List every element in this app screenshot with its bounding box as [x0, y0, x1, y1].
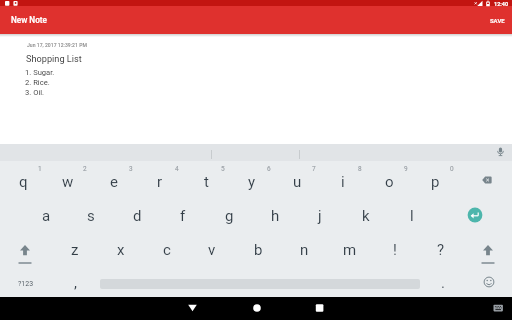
- staticText: 5: [221, 165, 225, 173]
- button[interactable]: i: [321, 167, 365, 197]
- staticText: 7: [312, 165, 316, 173]
- button[interactable]: [176, 298, 209, 319]
- button[interactable]: [464, 230, 509, 262]
- staticText: t: [204, 173, 209, 191]
- button[interactable]: r: [138, 167, 182, 197]
- staticText: g: [225, 207, 234, 225]
- button[interactable]: [0, 230, 45, 262]
- button[interactable]: y: [230, 167, 274, 197]
- button[interactable]: [240, 298, 273, 319]
- staticText: 4: [175, 165, 179, 173]
- button[interactable]: m: [328, 234, 372, 266]
- button[interactable]: x: [99, 234, 143, 266]
- staticText: 8: [358, 165, 362, 173]
- staticText: c: [163, 241, 171, 259]
- staticText: y: [248, 173, 256, 191]
- staticText: a: [42, 207, 51, 225]
- staticText: 2: [83, 165, 87, 173]
- staticText: e: [110, 173, 118, 191]
- staticText: d: [133, 207, 142, 225]
- button[interactable]: [464, 163, 509, 194]
- staticText: ,: [74, 274, 77, 292]
- staticText: h: [271, 207, 280, 225]
- button[interactable]: a: [24, 200, 68, 232]
- staticText: k: [362, 207, 370, 225]
- staticText: j: [318, 207, 322, 225]
- button[interactable]: s: [69, 200, 113, 232]
- staticText: 3: [129, 165, 133, 173]
- staticText: ?: [437, 241, 445, 259]
- button[interactable]: c: [145, 234, 189, 266]
- staticText: m: [343, 241, 357, 259]
- staticText: Shopping List: [26, 53, 82, 64]
- button[interactable]: b: [236, 234, 280, 266]
- button[interactable]: w: [46, 167, 90, 197]
- button[interactable]: t: [184, 167, 228, 197]
- button[interactable]: [453, 196, 498, 229]
- button[interactable]: n: [282, 234, 326, 266]
- staticText: o: [385, 173, 394, 191]
- button[interactable]: SAVE: [484, 13, 510, 27]
- staticText: 9: [404, 165, 408, 173]
- staticText: z: [71, 241, 79, 259]
- button[interactable]: [303, 298, 336, 319]
- staticText: p: [431, 173, 440, 191]
- staticText: q: [19, 173, 28, 191]
- button[interactable]: g: [207, 200, 251, 232]
- button[interactable]: [488, 144, 512, 161]
- staticText: 6: [267, 165, 271, 173]
- staticText: b: [254, 241, 263, 259]
- button[interactable]: ,: [60, 268, 90, 298]
- staticText: !: [393, 241, 397, 259]
- staticText: x: [117, 241, 125, 259]
- staticText: n: [300, 241, 309, 259]
- staticText: 12:40: [494, 1, 509, 7]
- button[interactable]: .: [428, 268, 458, 298]
- staticText: Jun 17, 2017 12:39:21 PM: [27, 42, 87, 48]
- staticText: s: [87, 207, 95, 225]
- staticText: 1: [38, 165, 42, 173]
- button[interactable]: z: [53, 234, 97, 266]
- button[interactable]: ?: [419, 234, 463, 266]
- staticText: 0: [450, 165, 454, 173]
- button[interactable]: d: [115, 200, 159, 232]
- button[interactable]: e: [92, 167, 136, 197]
- button[interactable]: j: [298, 200, 342, 232]
- button[interactable]: v: [190, 234, 234, 266]
- button[interactable]: p: [413, 167, 457, 197]
- staticText: New Note: [11, 15, 47, 25]
- staticText: u: [293, 173, 302, 191]
- button[interactable]: u: [275, 167, 319, 197]
- staticText: f: [180, 207, 186, 225]
- button[interactable]: !: [373, 234, 417, 266]
- button[interactable]: h: [253, 200, 297, 232]
- button[interactable]: q: [1, 167, 45, 197]
- staticText: .: [441, 274, 445, 292]
- button[interactable]: ?123: [6, 269, 46, 299]
- button[interactable]: l: [390, 200, 434, 232]
- button[interactable]: k: [344, 200, 388, 232]
- staticText: v: [208, 241, 216, 259]
- staticText: 1. Sugar. 2. Rice. 3. Oil.: [25, 68, 55, 97]
- staticText: SAVE: [490, 17, 505, 24]
- staticText: l: [410, 207, 414, 225]
- staticText: r: [157, 173, 163, 191]
- button[interactable]: [466, 264, 510, 296]
- staticText: i: [341, 173, 345, 191]
- button[interactable]: o: [367, 167, 411, 197]
- button[interactable]: f: [161, 200, 205, 232]
- staticText: ?123: [18, 280, 34, 288]
- staticText: w: [62, 173, 74, 191]
